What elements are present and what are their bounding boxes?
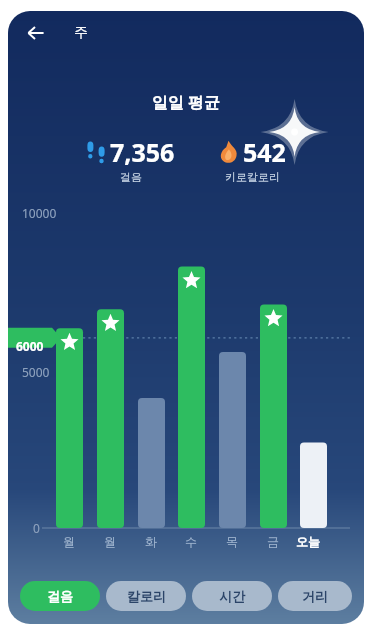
staticText: 걸음 [47,588,73,604]
staticText: 6000 [16,338,44,354]
staticText: 걸음 [120,170,142,184]
staticText: 목 [226,534,238,549]
button[interactable]: 걸음 [20,581,100,611]
staticText: 키로칼로리 [225,170,280,184]
button[interactable]: Back [16,13,56,53]
staticText: 0 [33,520,40,536]
staticText: 시간 [219,588,245,604]
staticText: 오늘 [296,534,320,549]
button[interactable]: 주 [68,18,94,48]
staticText: 칼로리 [127,588,166,604]
staticText: 금 [267,534,279,549]
staticText: 수 [185,534,197,549]
staticText: 월 [104,534,116,549]
button[interactable]: 칼로리 [106,581,186,611]
staticText: 5000 [22,364,50,380]
staticText: 10000 [22,205,57,221]
staticText: 거리 [302,588,328,604]
staticText: 542 [243,135,286,169]
staticText: 일일 평균 [8,91,364,113]
staticText: 월 [63,534,75,549]
staticText: 7,356 [110,135,175,169]
staticText: 주 [74,24,88,42]
staticText: 화 [145,534,157,549]
button[interactable]: 거리 [278,581,352,611]
button[interactable]: 시간 [192,581,272,611]
